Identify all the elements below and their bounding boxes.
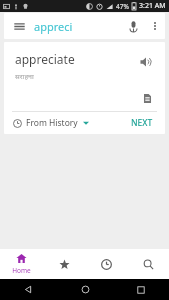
button[interactable]: Voice search bbox=[121, 13, 145, 39]
button[interactable]: Open navigation menu bbox=[4, 13, 34, 39]
button[interactable]: Home bbox=[0, 249, 43, 279]
staticText: 3:21 AM bbox=[139, 1, 166, 11]
button[interactable]: Search bbox=[127, 249, 169, 279]
button[interactable]: Recent apps bbox=[113, 279, 169, 300]
staticText: NEXT bbox=[131, 117, 153, 129]
button[interactable]: History bbox=[85, 249, 127, 279]
button[interactable]: More options bbox=[145, 13, 165, 39]
staticText: appreciate bbox=[15, 51, 75, 67]
staticText: Home bbox=[12, 266, 31, 275]
button[interactable]: Listen to pronunciation bbox=[135, 51, 157, 73]
button[interactable]: appreci bbox=[34, 13, 121, 39]
button[interactable]: NEXT bbox=[128, 114, 156, 132]
button[interactable]: Back bbox=[0, 279, 57, 300]
button[interactable]: From History bbox=[13, 117, 89, 129]
staticText: सराहना bbox=[15, 72, 34, 82]
staticText: From History bbox=[26, 117, 78, 129]
button[interactable]: Copy definition bbox=[137, 88, 157, 108]
button[interactable]: Home bbox=[57, 279, 113, 300]
button[interactable]: Favourites bbox=[43, 249, 85, 279]
staticText: appreci bbox=[34, 19, 73, 34]
staticText: 47% bbox=[116, 2, 129, 11]
